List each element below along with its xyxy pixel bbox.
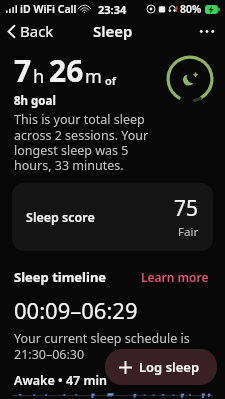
staticText: 7 <box>14 50 32 91</box>
staticText: This is your total sleep across 2 sessio… <box>14 111 155 173</box>
button[interactable]: Learn more <box>139 267 211 287</box>
button[interactable]: Log sleep <box>105 349 217 385</box>
staticText: 75 <box>174 194 199 223</box>
staticText: 26 <box>49 50 84 91</box>
staticText: Sleep timeline <box>14 268 107 286</box>
button[interactable]: Back <box>0 18 62 44</box>
staticText: Sleep score <box>26 209 95 226</box>
staticText: iD WiFi Call <box>20 2 77 16</box>
staticText: 8h goal <box>14 93 56 109</box>
button[interactable]: More options <box>189 23 225 40</box>
staticText: of <box>105 73 116 88</box>
staticText: 80% <box>180 2 202 16</box>
staticText: Log sleep <box>139 358 200 376</box>
staticText: Your current sleep schedule is 21:30–06:… <box>14 330 205 362</box>
staticText: m <box>85 64 102 89</box>
button[interactable]: Sleep score <box>12 183 213 251</box>
staticText: Learn more <box>141 269 209 285</box>
staticText: Back <box>20 21 54 41</box>
staticText: Sleep <box>93 21 133 41</box>
staticText: Awake • 47 min <box>14 372 108 389</box>
staticText: 23:34 <box>98 2 127 17</box>
staticText: h <box>33 64 45 89</box>
staticText: Fair <box>178 224 199 240</box>
staticText: 00:09–06:29 <box>14 295 138 325</box>
